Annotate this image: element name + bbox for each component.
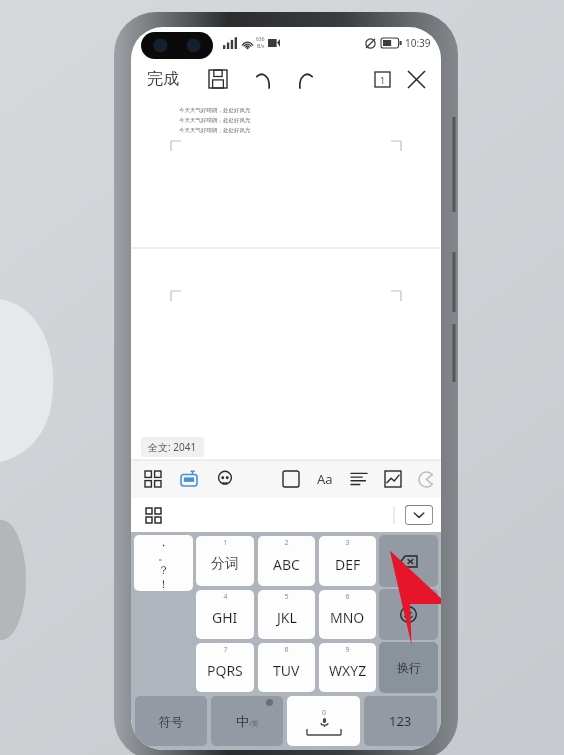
button[interactable]: Pages bbox=[365, 62, 399, 96]
button[interactable]: 符号 bbox=[135, 696, 207, 746]
button[interactable]: 全文: 2041 bbox=[141, 437, 204, 457]
button[interactable]: 1 bbox=[196, 536, 254, 586]
button[interactable]: Redo bbox=[289, 62, 323, 96]
button[interactable]: Close bbox=[399, 61, 433, 97]
button[interactable]: Input methods bbox=[139, 501, 167, 529]
staticText: Aa bbox=[317, 470, 333, 488]
staticText: 符号 bbox=[159, 714, 183, 729]
button[interactable]: 7 bbox=[196, 643, 254, 692]
staticText: 全文: 2041 bbox=[148, 440, 197, 454]
staticText: 。 bbox=[158, 549, 169, 563]
staticText: 8 bbox=[284, 645, 289, 655]
staticText: 完成 bbox=[147, 69, 179, 89]
button[interactable]: 4 bbox=[196, 590, 254, 639]
button[interactable]: Night mode bbox=[413, 466, 439, 492]
staticText: 2 bbox=[284, 538, 289, 548]
staticText: 换行 bbox=[397, 660, 421, 675]
staticText: PQRS bbox=[207, 661, 243, 680]
staticText: 9 bbox=[345, 645, 350, 655]
staticText: 0 bbox=[322, 708, 327, 718]
button[interactable]: 5 bbox=[258, 590, 315, 639]
button[interactable]: 0 bbox=[287, 696, 360, 746]
button[interactable]: 6 bbox=[319, 590, 376, 639]
button[interactable]: Emoji bbox=[379, 589, 438, 640]
staticText: GHI bbox=[212, 608, 238, 627]
button[interactable]: 2 bbox=[258, 536, 315, 586]
button[interactable]: Backspace bbox=[379, 535, 438, 587]
staticText: ？ bbox=[158, 563, 169, 577]
button[interactable]: Hide keyboard bbox=[405, 505, 433, 525]
button[interactable]: Page bbox=[277, 465, 305, 493]
staticText: 6 bbox=[345, 592, 350, 602]
button[interactable]: 中 bbox=[211, 696, 283, 746]
button[interactable]: Emoji bbox=[211, 465, 239, 493]
staticText: 7 bbox=[223, 645, 228, 655]
staticText: JKL bbox=[277, 608, 297, 627]
staticText: 636 bbox=[256, 36, 265, 43]
button[interactable]: 9 bbox=[319, 643, 376, 692]
staticText: 今天天气好晴朗，处处好风光 bbox=[179, 107, 251, 114]
button[interactable]: Font size bbox=[311, 465, 339, 493]
staticText: WXYZ bbox=[329, 661, 367, 680]
button[interactable]: Keyboard bbox=[175, 465, 203, 493]
staticText: 中 bbox=[236, 713, 249, 729]
staticText: TUV bbox=[273, 661, 300, 680]
staticText: B/s bbox=[257, 43, 265, 50]
staticText: ！ bbox=[158, 577, 169, 591]
button[interactable]: 换行 bbox=[379, 642, 438, 693]
button[interactable]: 3 bbox=[319, 536, 376, 586]
staticText: 1 bbox=[380, 74, 386, 86]
staticText: /英 bbox=[249, 719, 259, 729]
button[interactable]: ， bbox=[134, 535, 193, 591]
button[interactable]: 完成 bbox=[141, 65, 185, 93]
staticText: 5 bbox=[284, 592, 289, 602]
staticText: DEF bbox=[335, 555, 361, 574]
staticText: 123 bbox=[389, 712, 412, 730]
staticText: 今天天气好晴朗，处处好风光 bbox=[179, 117, 251, 124]
staticText: MNO bbox=[330, 608, 365, 627]
button[interactable]: Save bbox=[201, 62, 235, 96]
button[interactable]: 8 bbox=[258, 643, 315, 692]
staticText: ABC bbox=[273, 555, 300, 574]
button[interactable]: Apps bbox=[139, 465, 167, 493]
staticText: 10:39 bbox=[405, 36, 431, 50]
button[interactable]: Align bbox=[345, 465, 373, 493]
button[interactable]: 123 bbox=[364, 696, 437, 746]
staticText: ， bbox=[158, 535, 169, 549]
staticText: 今天天气好晴朗，处处好风光 bbox=[179, 127, 251, 134]
button[interactable]: Undo bbox=[245, 62, 279, 96]
button[interactable]: Insert image bbox=[379, 465, 407, 493]
staticText: 分词 bbox=[211, 555, 239, 573]
staticText: 1 bbox=[223, 538, 228, 548]
staticText: 4 bbox=[223, 592, 228, 602]
staticText: 3 bbox=[345, 538, 350, 548]
